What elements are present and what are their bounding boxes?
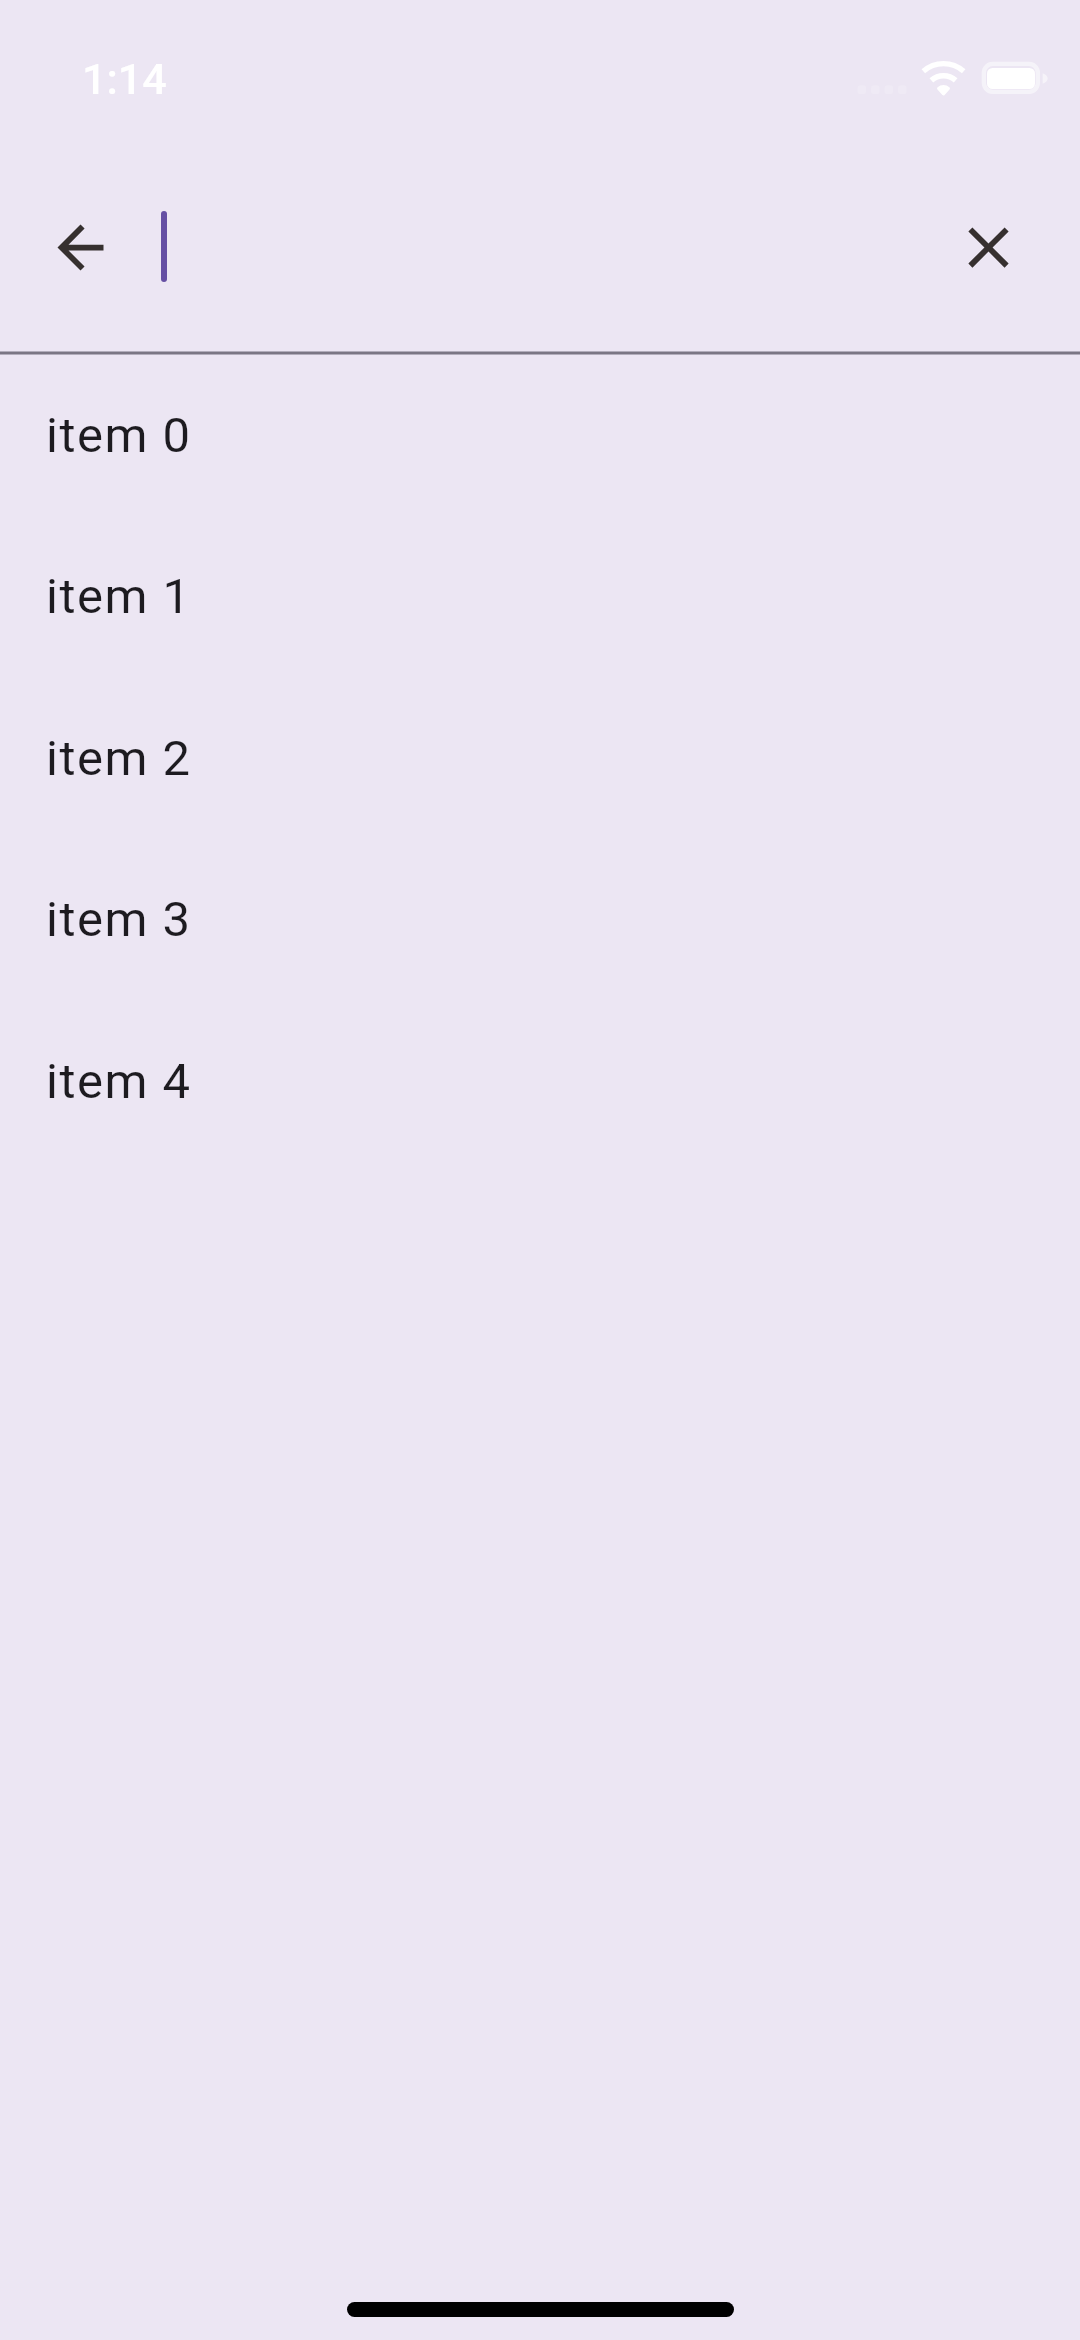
staticText: item 1 bbox=[46, 568, 192, 625]
button[interactable]: Navigate up bbox=[46, 213, 115, 282]
button[interactable]: Close search bbox=[954, 213, 1023, 282]
staticText: 1:14 bbox=[82, 54, 167, 104]
staticText: item 4 bbox=[46, 1053, 192, 1110]
staticText: item 0 bbox=[46, 407, 192, 464]
button[interactable]: item 0 bbox=[0, 354, 1080, 515]
button[interactable]: item 4 bbox=[0, 1000, 1080, 1161]
button[interactable]: item 3 bbox=[0, 838, 1080, 999]
button[interactable]: item 1 bbox=[0, 515, 1080, 676]
staticText: item 3 bbox=[46, 891, 192, 948]
button[interactable]: item 2 bbox=[0, 677, 1080, 838]
staticText: item 2 bbox=[46, 730, 192, 787]
button[interactable]: Search query bbox=[137, 192, 937, 302]
